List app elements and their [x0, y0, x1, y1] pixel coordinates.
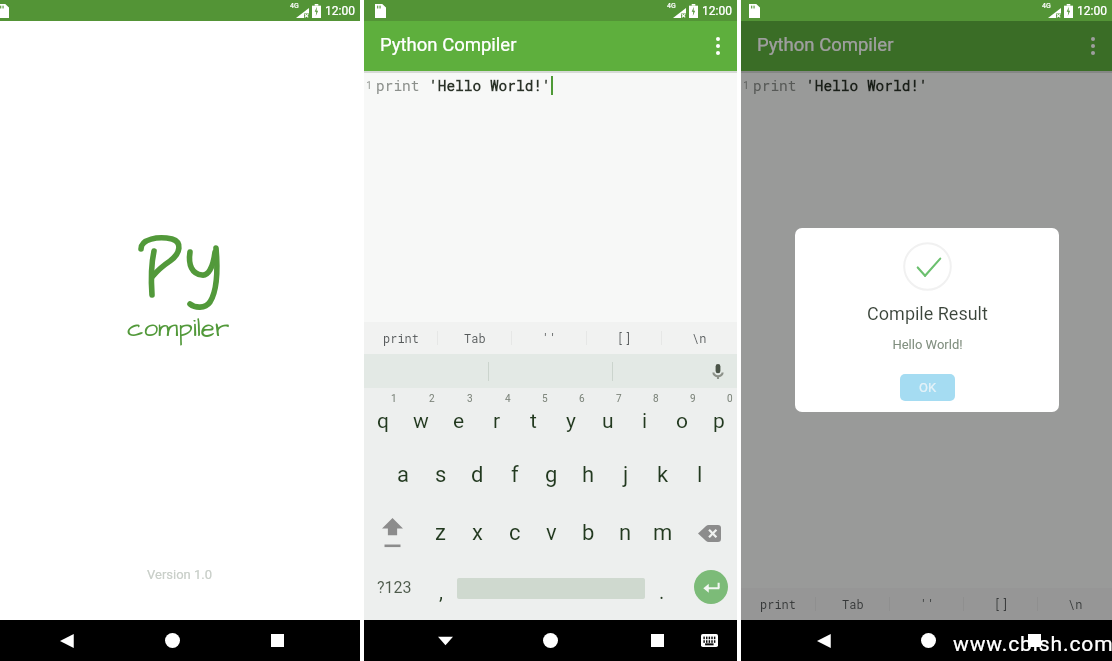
staticText: 0: [727, 393, 733, 405]
button[interactable]: 3: [440, 388, 478, 446]
button[interactable]: Recents: [255, 620, 299, 661]
button[interactable]: Tab: [816, 588, 890, 620]
button[interactable]: []: [964, 588, 1038, 620]
button[interactable]: []: [587, 322, 662, 354]
button[interactable]: b: [570, 504, 607, 562]
button[interactable]: '': [890, 588, 964, 620]
button[interactable]: More options: [700, 28, 736, 64]
button[interactable]: c: [496, 504, 533, 562]
button[interactable]: k: [644, 446, 681, 504]
button[interactable]: \n: [662, 322, 737, 354]
staticText: 4G: [667, 2, 676, 10]
staticText: .: [659, 580, 665, 603]
button[interactable]: h: [570, 446, 607, 504]
staticText: z: [435, 520, 446, 546]
button[interactable]: Home: [906, 620, 950, 661]
button[interactable]: 2: [402, 388, 440, 446]
button[interactable]: j: [607, 446, 644, 504]
staticText: x: [472, 520, 483, 546]
staticText: 1: [743, 79, 750, 92]
staticText: d: [471, 462, 484, 488]
button[interactable]: Show keyboard: [687, 620, 731, 661]
button[interactable]: Backspace: [681, 504, 737, 562]
staticText: Tab: [842, 596, 864, 612]
staticText: \n: [692, 330, 707, 346]
button[interactable]: z: [421, 504, 459, 562]
button[interactable]: Recents: [1012, 620, 1056, 661]
staticText: 6: [579, 393, 585, 405]
staticText: Tab: [464, 330, 486, 346]
button[interactable]: ?123: [364, 562, 424, 620]
staticText: 12:00: [325, 4, 355, 18]
button[interactable]: '': [512, 322, 587, 354]
button[interactable]: 4: [478, 388, 515, 446]
button[interactable]: a: [384, 446, 422, 504]
staticText: p: [713, 409, 725, 434]
button[interactable]: Enter: [694, 570, 728, 604]
button[interactable]: Back: [423, 620, 467, 661]
staticText: Hello World!: [892, 337, 963, 352]
button[interactable]: l: [681, 446, 718, 504]
button[interactable]: Back: [802, 620, 846, 661]
staticText: o: [676, 409, 688, 434]
button[interactable]: 5: [515, 388, 552, 446]
staticText: n: [619, 520, 632, 546]
button[interactable]: Home: [528, 620, 572, 661]
button[interactable]: m: [644, 504, 681, 562]
button[interactable]: Recents: [635, 620, 679, 661]
button[interactable]: print: [364, 322, 438, 354]
staticText: q: [377, 409, 389, 434]
button[interactable]: 9: [663, 388, 700, 446]
staticText: 12:00: [702, 4, 732, 18]
button[interactable]: d: [459, 446, 496, 504]
button[interactable]: g: [533, 446, 570, 504]
staticText: []: [617, 330, 632, 346]
button[interactable]: OK: [900, 374, 955, 401]
button[interactable]: print: [741, 588, 816, 620]
button[interactable]: More options: [1075, 28, 1111, 64]
staticText: ?123: [377, 578, 412, 597]
staticText: f: [511, 462, 519, 488]
staticText: 4G: [1042, 2, 1051, 10]
staticText: \n: [1068, 596, 1083, 612]
button[interactable]: 8: [626, 388, 663, 446]
staticText: 4G: [290, 2, 299, 10]
staticText: 5: [542, 393, 548, 405]
button[interactable]: 0: [700, 388, 737, 446]
button[interactable]: \n: [1038, 588, 1112, 620]
button[interactable]: Back: [45, 620, 89, 661]
staticText: 1: [391, 393, 397, 405]
button[interactable]: v: [533, 504, 570, 562]
staticText: j: [623, 462, 629, 488]
button[interactable]: 1: [364, 388, 402, 446]
staticText: 8: [653, 393, 659, 405]
button[interactable]: 7: [589, 388, 626, 446]
staticText: w: [413, 409, 429, 434]
button[interactable]: Tab: [438, 322, 512, 354]
button[interactable]: ,: [424, 562, 457, 620]
button[interactable]: Home: [150, 620, 194, 661]
button[interactable]: n: [607, 504, 644, 562]
staticText: h: [582, 462, 595, 488]
button[interactable]: x: [459, 504, 496, 562]
button[interactable]: .: [645, 562, 678, 620]
staticText: Python Compiler: [757, 34, 894, 56]
staticText: s: [435, 462, 447, 488]
button[interactable]: Voice input: [706, 359, 730, 383]
button[interactable]: 6: [552, 388, 589, 446]
staticText: []: [994, 596, 1009, 612]
staticText: i: [642, 409, 648, 434]
staticText: '': [920, 596, 935, 612]
staticText: a: [397, 462, 409, 488]
staticText: m: [653, 520, 673, 546]
staticText: 'Hello World!': [806, 76, 928, 95]
button[interactable]: f: [496, 446, 533, 504]
staticText: u: [602, 409, 614, 434]
button[interactable]: s: [422, 446, 459, 504]
staticText: e: [453, 409, 465, 434]
staticText: 7: [616, 393, 622, 405]
button[interactable]: Shift: [364, 504, 421, 562]
staticText: print: [760, 596, 797, 612]
staticText: 3: [467, 393, 473, 405]
